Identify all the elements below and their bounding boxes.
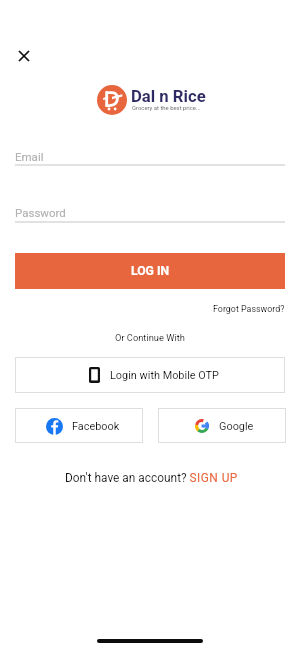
staticText: Dal n Rice [131, 87, 206, 107]
button[interactable]: Close [12, 44, 36, 68]
staticText: Google [219, 420, 254, 433]
button[interactable]: Google [158, 408, 286, 443]
staticText: Password [15, 206, 66, 219]
staticText: Login with Mobile OTP [110, 369, 219, 382]
staticText: LOG IN [131, 264, 170, 278]
button[interactable]: LOG IN [15, 253, 285, 289]
staticText: Email [15, 150, 44, 163]
button[interactable]: Facebook [15, 408, 143, 443]
staticText: Or Continue With [115, 332, 185, 343]
button[interactable]: Don't have an account? SIGN UP [65, 471, 238, 485]
button[interactable]: Login with Mobile OTP [15, 357, 285, 393]
staticText: Facebook [72, 420, 120, 433]
button[interactable]: Forgot Password? [200, 301, 285, 317]
staticText: Grocery at the best price... [132, 105, 201, 112]
staticText: Forgot Password? [213, 304, 285, 314]
